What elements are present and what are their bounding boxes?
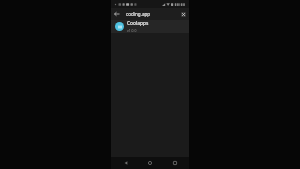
button[interactable]: Home	[140, 157, 160, 169]
staticText: Coolapps	[127, 20, 149, 27]
staticText: coding.app	[126, 11, 174, 17]
staticText: v1.0.0	[127, 28, 137, 33]
button[interactable]: Recent apps	[165, 157, 185, 169]
button[interactable]: Clear search	[177, 8, 189, 20]
button[interactable]: Back	[111, 8, 123, 20]
button[interactable]: Coolapps	[111, 20, 189, 33]
button[interactable]: Back	[116, 157, 136, 169]
